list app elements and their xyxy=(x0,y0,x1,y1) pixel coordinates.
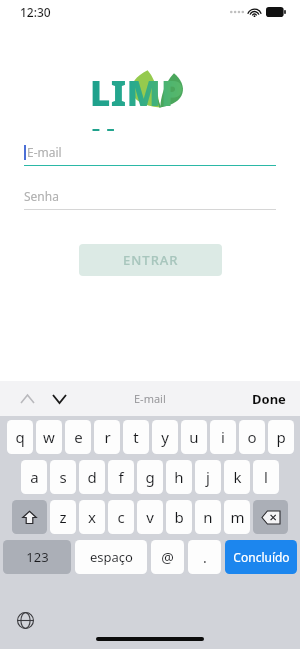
button[interactable]: c xyxy=(108,500,134,534)
staticText: n xyxy=(203,507,213,527)
staticText: y xyxy=(161,427,169,447)
staticText: k xyxy=(233,467,242,487)
button[interactable]: i xyxy=(210,420,236,454)
staticText: t xyxy=(133,427,139,447)
button[interactable]: E-mail xyxy=(24,144,276,166)
staticText: E-mail xyxy=(134,391,166,406)
button[interactable]: espaço xyxy=(75,540,147,574)
button[interactable]: k xyxy=(224,460,250,494)
button[interactable]: Change keyboard language xyxy=(12,607,38,633)
staticText: ENTRAR xyxy=(123,251,179,269)
button[interactable]: Senha xyxy=(24,188,276,210)
button[interactable]: y xyxy=(152,420,178,454)
staticText: b xyxy=(174,507,184,527)
staticText: p xyxy=(276,427,286,447)
button[interactable]: s xyxy=(50,460,76,494)
staticText: . xyxy=(203,548,207,567)
button[interactable]: Backspace xyxy=(253,500,288,534)
staticText: Senha xyxy=(24,188,59,204)
staticText: q xyxy=(15,427,25,447)
staticText: o xyxy=(247,427,257,447)
button[interactable]: h xyxy=(166,460,192,494)
button[interactable]: v xyxy=(137,500,163,534)
button[interactable]: m xyxy=(224,500,250,534)
button[interactable]: d xyxy=(79,460,105,494)
button[interactable]: 123 xyxy=(3,540,71,574)
button[interactable]: e xyxy=(65,420,91,454)
staticText: espaço xyxy=(90,548,133,566)
button[interactable]: @ xyxy=(151,540,184,574)
button[interactable]: o xyxy=(239,420,265,454)
staticText: m xyxy=(230,507,245,527)
staticText: e xyxy=(74,427,83,447)
staticText: j xyxy=(206,467,210,487)
button[interactable]: u xyxy=(181,420,207,454)
button[interactable]: Next field xyxy=(46,386,72,412)
staticText: 12:30 xyxy=(20,4,51,20)
staticText: i xyxy=(221,427,225,447)
button[interactable]: Done xyxy=(248,386,290,412)
button[interactable]: ENTRAR xyxy=(79,244,222,276)
staticText: @ xyxy=(161,548,174,567)
button[interactable]: n xyxy=(195,500,221,534)
staticText: x xyxy=(88,507,96,527)
button[interactable]: l xyxy=(253,460,279,494)
button[interactable]: z xyxy=(50,500,76,534)
button[interactable]: f xyxy=(108,460,134,494)
staticText: z xyxy=(59,507,67,527)
staticText: w xyxy=(43,427,55,447)
button[interactable]: . xyxy=(188,540,221,574)
staticText: v xyxy=(146,507,154,527)
button[interactable]: w xyxy=(36,420,62,454)
button[interactable]: p xyxy=(268,420,294,454)
button[interactable]: r xyxy=(94,420,120,454)
staticText: s xyxy=(59,467,67,487)
staticText: g xyxy=(145,467,155,487)
button[interactable]: b xyxy=(166,500,192,534)
button[interactable]: q xyxy=(7,420,33,454)
staticText: 123 xyxy=(26,548,49,566)
staticText: E-mail xyxy=(27,144,62,160)
button[interactable]: t xyxy=(123,420,149,454)
staticText: l xyxy=(264,467,268,487)
button[interactable]: Shift xyxy=(12,500,47,534)
button[interactable]: Concluído xyxy=(225,540,297,574)
button[interactable]: x xyxy=(79,500,105,534)
staticText: r xyxy=(104,427,111,447)
staticText: f xyxy=(118,467,124,487)
staticText: a xyxy=(30,467,39,487)
button[interactable]: a xyxy=(21,460,47,494)
button[interactable]: g xyxy=(137,460,163,494)
button[interactable]: j xyxy=(195,460,221,494)
staticText: Done xyxy=(252,390,286,408)
staticText: d xyxy=(87,467,97,487)
button[interactable]: Previous field xyxy=(14,386,40,412)
staticText: LIMPU xyxy=(90,69,210,131)
staticText: u xyxy=(189,427,199,447)
staticText: Concluído xyxy=(233,549,290,565)
staticText: h xyxy=(174,467,184,487)
staticText: c xyxy=(117,507,125,527)
